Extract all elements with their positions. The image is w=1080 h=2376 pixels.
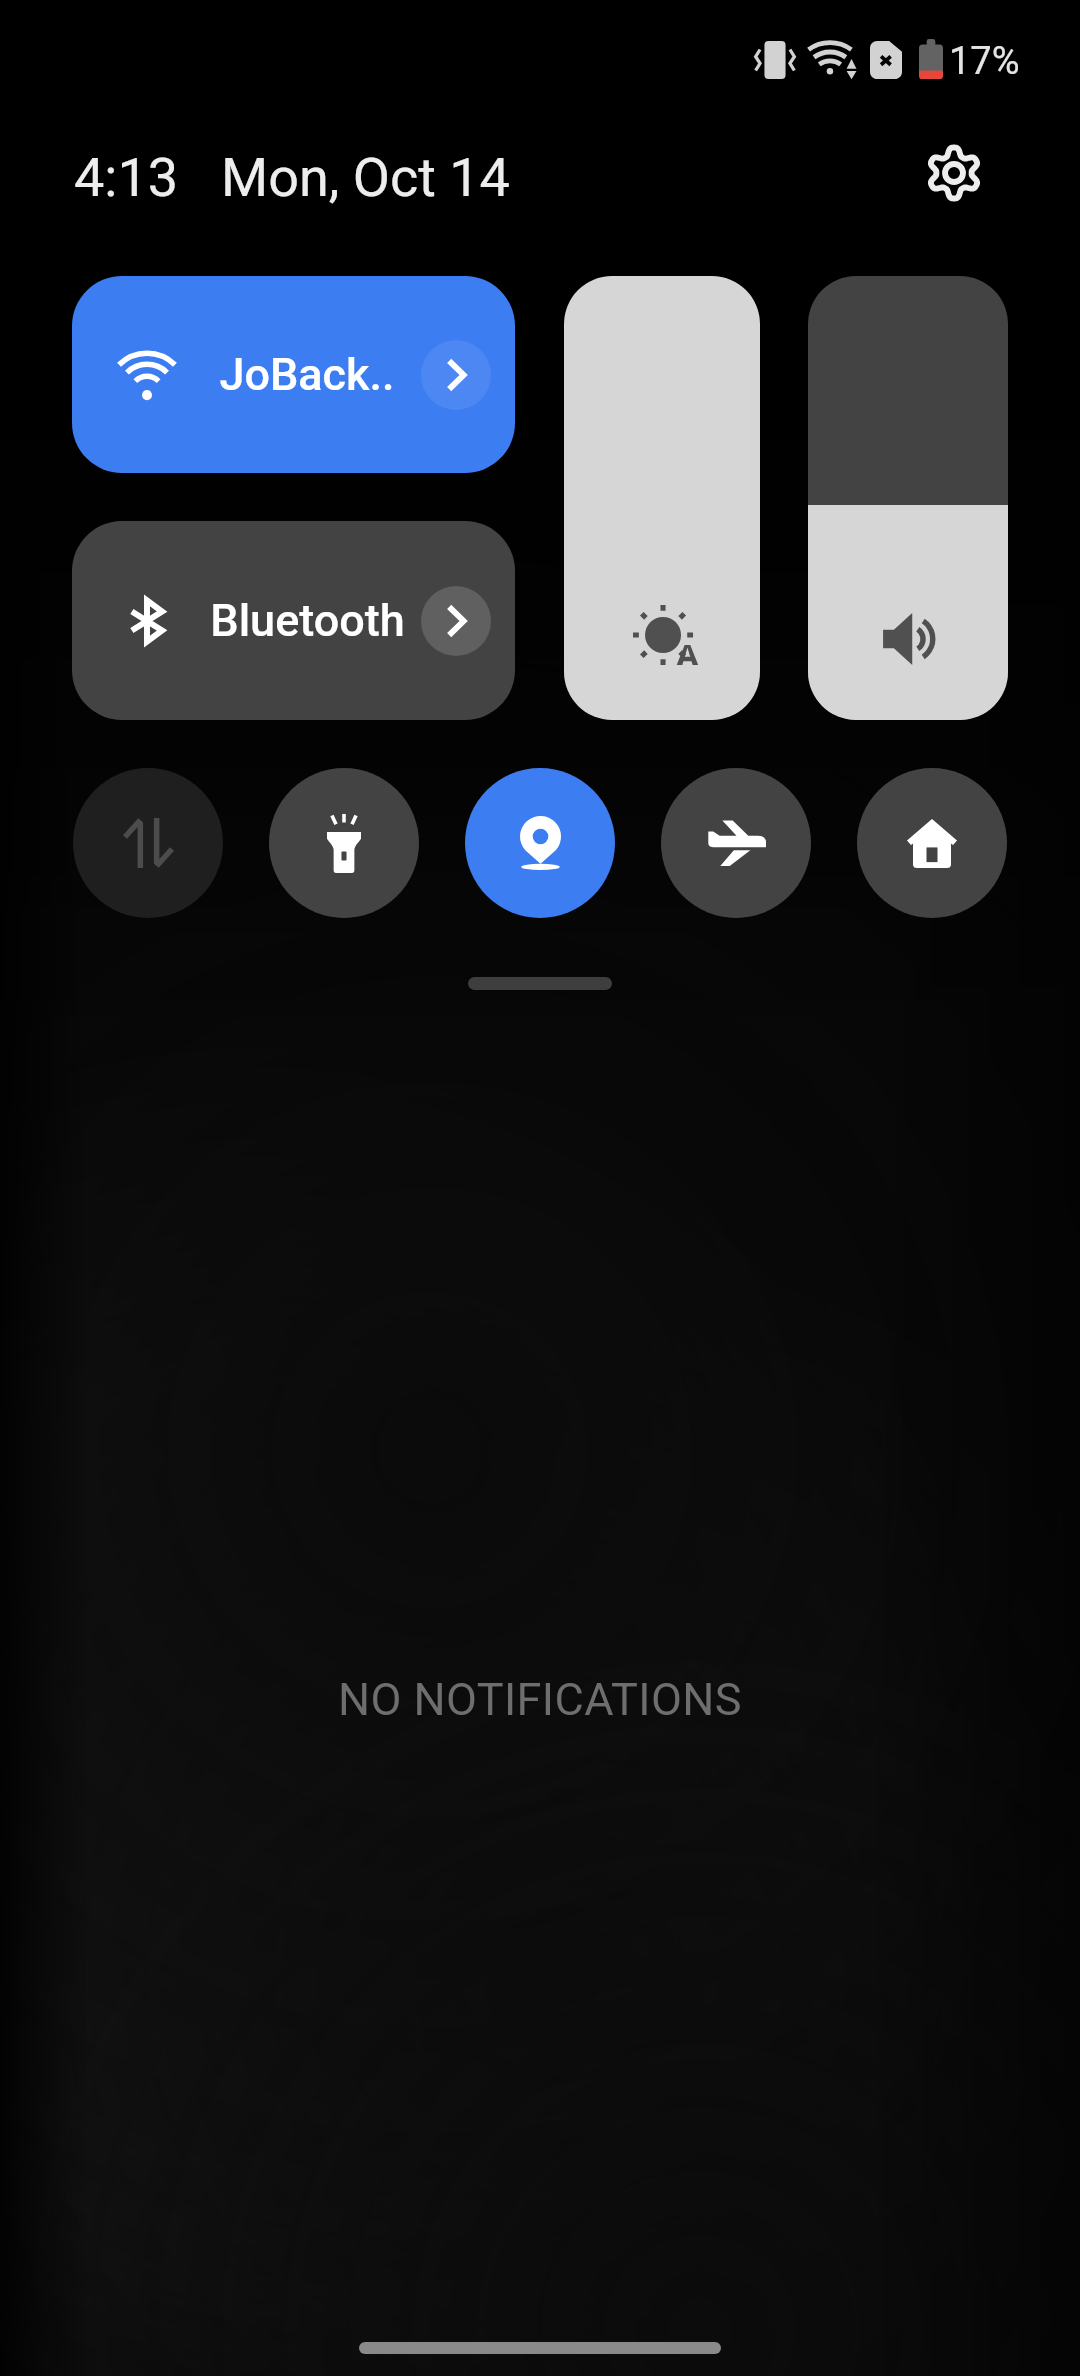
button[interactable]: Airplane mode [661,768,811,918]
button[interactable]: Bluetooth details [421,586,491,656]
button[interactable]: Mobile data [73,768,223,918]
button[interactable]: Flashlight [269,768,419,918]
staticText: Mon, Oct 14 [221,146,510,209]
button[interactable]: Location [465,768,615,918]
button[interactable]: Settings [906,125,1002,221]
staticText: NO NOTIFICATIONS [0,1673,1080,1726]
button[interactable]: Home [857,768,1007,918]
staticText: JoBack.. [219,348,395,401]
button[interactable]: Internet details [421,340,491,410]
staticText: 17% [949,39,1020,84]
button[interactable]: Volume [808,276,1008,720]
staticText: 4:13 [74,146,179,209]
button[interactable]: Expand quick settings [468,977,612,990]
button[interactable]: Brightness [564,276,760,720]
button[interactable]: Bluetooth [72,521,515,720]
staticText: Bluetooth [210,594,405,647]
button[interactable]: JoBack.. [72,276,515,473]
